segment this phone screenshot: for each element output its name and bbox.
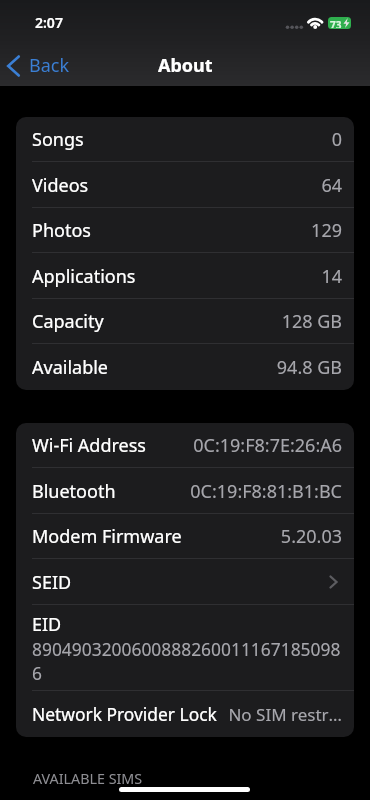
- staticText: 0C:19:F8:81:B1:BC: [190, 479, 342, 504]
- staticText: Photos: [32, 218, 91, 243]
- staticText: AVAILABLE SIMS: [33, 769, 143, 788]
- staticText: Modem Firmware: [32, 524, 182, 549]
- staticText: Network Provider Lock: [32, 702, 217, 726]
- staticText: 73: [330, 18, 342, 28]
- staticText: Applications: [32, 264, 136, 289]
- staticText: Songs: [32, 127, 84, 152]
- staticText: Videos: [32, 173, 89, 198]
- button[interactable]: EID: [16, 605, 354, 691]
- staticText: Bluetooth: [32, 479, 116, 504]
- staticText: Back: [29, 53, 70, 78]
- button[interactable]: Songs: [16, 117, 354, 162]
- staticText: 2:07: [35, 13, 63, 32]
- staticText: 0: [331, 127, 342, 152]
- staticText: 0C:19:F8:7E:26:A6: [193, 433, 342, 458]
- staticText: 5.20.03: [280, 524, 342, 549]
- staticText: 14: [321, 264, 342, 289]
- staticText: Capacity: [32, 309, 104, 334]
- staticText: 89049032006008882600111671850986: [32, 637, 342, 685]
- staticText: 64: [321, 173, 342, 198]
- staticText: 129: [311, 218, 342, 243]
- staticText: 128 GB: [281, 309, 342, 334]
- button[interactable]: Modem Firmware: [16, 514, 354, 559]
- button[interactable]: SEID: [16, 559, 354, 605]
- button[interactable]: Wi-Fi Address: [16, 423, 354, 468]
- staticText: About: [158, 53, 213, 78]
- staticText: Wi-Fi Address: [32, 433, 146, 458]
- button[interactable]: Available: [16, 344, 354, 390]
- button[interactable]: Back: [6, 53, 70, 78]
- button[interactable]: Bluetooth: [16, 468, 354, 514]
- staticText: No SIM restrictions: [225, 703, 342, 726]
- button[interactable]: Network Provider Lock: [16, 691, 354, 737]
- button[interactable]: Applications: [16, 253, 354, 299]
- button[interactable]: Videos: [16, 162, 354, 208]
- button[interactable]: Capacity: [16, 299, 354, 344]
- staticText: EID: [32, 612, 62, 637]
- staticText: Available: [32, 355, 108, 380]
- staticText: 94.8 GB: [276, 355, 342, 380]
- button[interactable]: Photos: [16, 208, 354, 253]
- staticText: SEID: [32, 570, 72, 595]
